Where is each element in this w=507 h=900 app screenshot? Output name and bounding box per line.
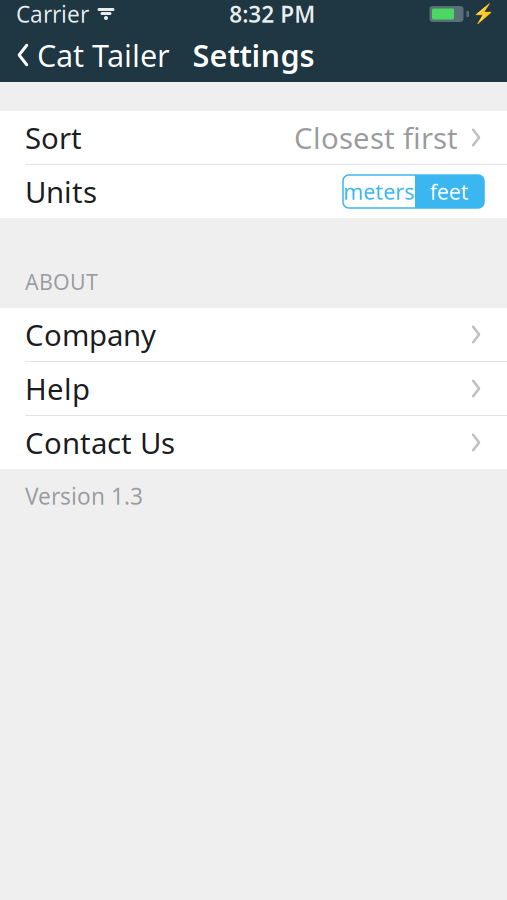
staticText: ABOUT [25, 268, 98, 296]
button[interactable]: Cat Tailer [0, 27, 170, 83]
staticText: 8:32 PM [229, 0, 315, 29]
button[interactable]: feet [415, 175, 484, 208]
staticText: Settings [192, 35, 314, 75]
button[interactable]: Contact Us [0, 416, 507, 469]
staticText: Carrier [16, 0, 89, 29]
staticText: ⚡ [472, 3, 495, 25]
staticText: Closest first [294, 118, 458, 157]
button[interactable]: Help [0, 362, 507, 415]
button[interactable]: Sort [0, 111, 507, 164]
staticText: Cat Tailer [37, 35, 170, 75]
staticText: Contact Us [25, 423, 175, 462]
staticText: meters [343, 177, 414, 206]
staticText: Sort [25, 118, 82, 157]
staticText: Company [25, 315, 156, 354]
button[interactable]: meters [343, 175, 415, 208]
staticText: Units [25, 172, 97, 211]
staticText: Version 1.3 [25, 481, 143, 511]
staticText: feet [430, 177, 469, 206]
staticText: Help [25, 369, 90, 408]
button[interactable]: Company [0, 308, 507, 361]
